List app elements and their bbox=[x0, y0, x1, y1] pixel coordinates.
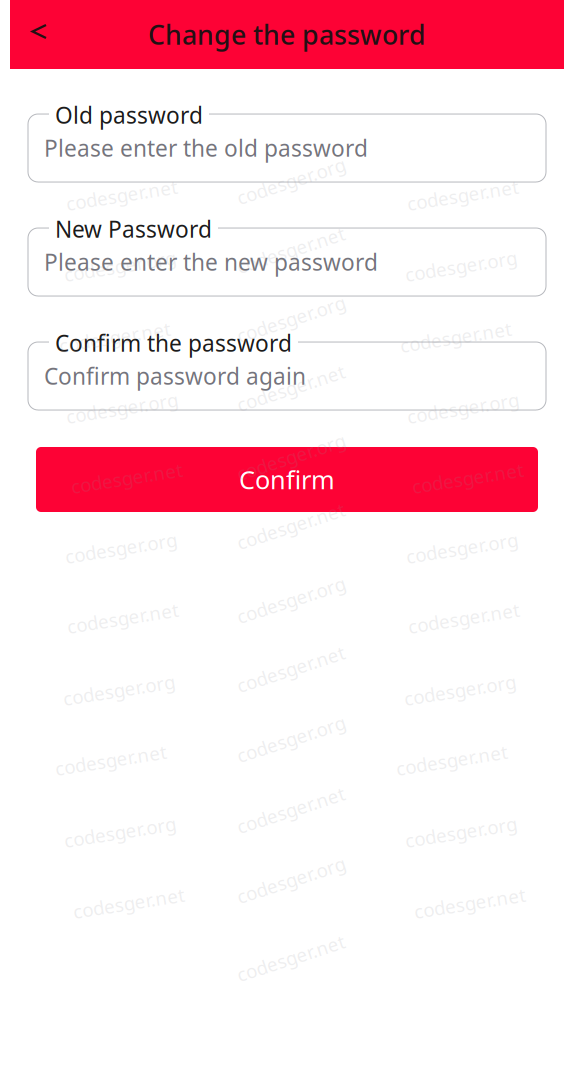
staticText: codesger.net bbox=[234, 514, 347, 538]
staticText: codesger.net bbox=[413, 891, 526, 915]
staticText: codesger.net bbox=[395, 748, 508, 772]
staticText: codesger.net bbox=[66, 606, 179, 630]
staticText: codesger.org bbox=[234, 727, 347, 751]
button[interactable]: Confirm the password bbox=[28, 342, 546, 410]
staticText: codesger.org bbox=[234, 307, 347, 331]
staticText: codesger.net bbox=[234, 376, 347, 400]
staticText: codesger.org bbox=[234, 445, 347, 469]
staticText: codesger.org bbox=[63, 254, 176, 278]
staticText: codesger.net bbox=[65, 183, 178, 207]
staticText: codesger.org bbox=[65, 396, 178, 420]
staticText: codesger.net bbox=[407, 606, 520, 630]
staticText: codesger.org bbox=[405, 536, 518, 560]
staticText: codesger.net bbox=[406, 183, 519, 207]
button[interactable]: Confirm bbox=[36, 447, 538, 512]
staticText: Old password bbox=[55, 100, 203, 130]
staticText: codesger.org bbox=[406, 396, 519, 420]
staticText: codesger.net bbox=[399, 325, 512, 349]
staticText: codesger.net bbox=[234, 238, 347, 262]
button[interactable]: Back bbox=[10, 8, 68, 60]
staticText: Confirm password again bbox=[44, 361, 306, 391]
staticText: codesger.org bbox=[234, 868, 347, 892]
staticText: codesger.net bbox=[234, 798, 347, 822]
staticText: codesger.net bbox=[58, 325, 171, 349]
staticText: codesger.org bbox=[404, 254, 517, 278]
staticText: codesger.net bbox=[72, 891, 185, 915]
staticText: codesger.org bbox=[64, 536, 177, 560]
staticText: codesger.net bbox=[70, 466, 183, 490]
staticText: Change the password bbox=[148, 17, 426, 52]
staticText: codesger.org bbox=[63, 820, 176, 844]
staticText: New Password bbox=[55, 214, 212, 244]
staticText: Please enter the new password bbox=[44, 247, 378, 277]
button[interactable]: Old password bbox=[28, 114, 546, 182]
staticText: Confirm the password bbox=[55, 328, 292, 358]
staticText: codesger.org bbox=[62, 678, 175, 702]
staticText: Confirm bbox=[239, 463, 335, 496]
staticText: codesger.net bbox=[54, 748, 167, 772]
staticText: codesger.org bbox=[234, 169, 347, 193]
staticText: codesger.org bbox=[404, 820, 517, 844]
staticText: codesger.org bbox=[234, 588, 347, 612]
staticText: codesger.net bbox=[234, 657, 347, 681]
staticText: codesger.net bbox=[234, 946, 347, 970]
staticText: codesger.org bbox=[403, 678, 516, 702]
button[interactable]: New Password bbox=[28, 228, 546, 296]
staticText: Please enter the old password bbox=[44, 133, 368, 163]
staticText: codesger.net bbox=[411, 466, 524, 490]
